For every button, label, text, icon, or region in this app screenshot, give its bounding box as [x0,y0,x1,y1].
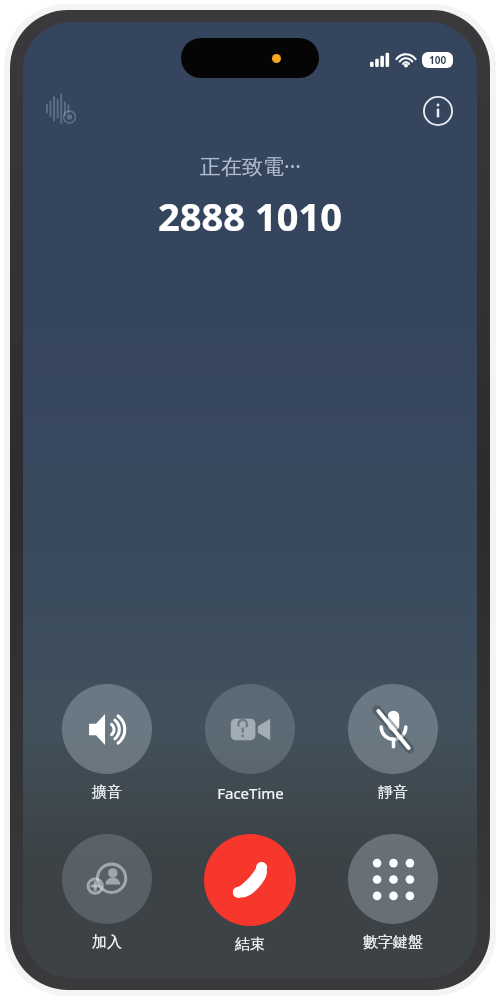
button[interactable]: End call [191,832,309,956]
staticText: 100 [429,53,447,67]
staticText: 結束 [235,935,265,954]
button[interactable]: Add call [48,832,166,954]
staticText: 加入 [92,933,122,952]
staticText: 2888 1010 [158,190,342,242]
button[interactable]: Keypad [334,832,452,954]
staticText: 數字鍵盤 [363,933,423,952]
staticText: 擴音 [92,783,122,802]
button[interactable]: Call info [419,92,457,130]
staticText: 靜音 [378,783,408,802]
staticText: FaceTime [217,783,284,803]
button[interactable]: FaceTime [191,682,309,805]
button[interactable]: Speaker [48,682,166,804]
other: Call recording [45,94,79,126]
button[interactable]: Mute [334,682,452,804]
staticText: 正在致電··· [200,152,301,181]
